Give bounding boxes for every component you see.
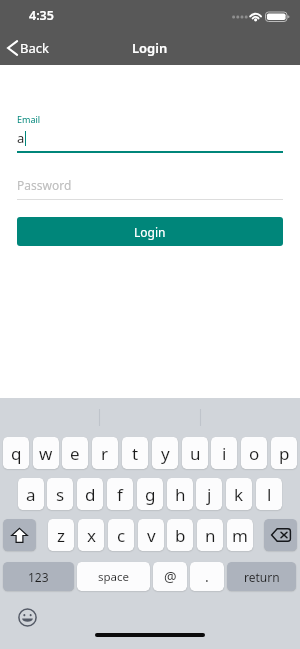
button[interactable]: v [138,519,164,551]
staticText: Email [17,113,41,125]
button[interactable]: n [197,519,223,551]
staticText: d [85,483,96,506]
button[interactable]: Backspace [264,519,297,551]
staticText: a [26,483,36,506]
staticText: b [175,524,186,547]
staticText: t [132,442,139,465]
staticText: @ [164,567,177,586]
staticText: y [161,442,170,465]
staticText: return [244,569,280,585]
button[interactable]: 123 [3,562,74,591]
staticText: Password [17,177,72,193]
staticText: a [17,129,25,147]
staticText: l [267,483,272,506]
button[interactable]: o [241,437,267,469]
staticText: p [279,442,290,465]
button[interactable]: p [271,437,297,469]
staticText: n [205,524,216,547]
button[interactable]: f [107,478,133,510]
button[interactable]: h [167,478,193,510]
staticText: k [234,483,244,506]
button[interactable]: e [62,437,88,469]
button[interactable]: t [122,437,148,469]
staticText: z [57,524,65,547]
button[interactable]: w [33,437,59,469]
staticText: q [11,442,22,465]
staticText: s [56,483,65,506]
staticText: Back [20,39,49,57]
button[interactable]: Login [17,217,283,246]
staticText: u [190,442,201,465]
button[interactable]: return [227,562,296,591]
button[interactable]: y [152,437,178,469]
staticText: c [117,524,126,547]
staticText: g [145,483,156,506]
staticText: Login [132,39,168,57]
staticText: f [117,483,123,506]
staticText: 123 [28,569,49,585]
button[interactable]: Emoji keyboard [17,607,38,628]
staticText: j [207,483,212,506]
staticText: v [147,524,156,547]
staticText: Login [134,224,166,240]
button[interactable]: d [77,478,103,510]
staticText: r [101,442,109,465]
button[interactable]: q [3,437,29,469]
button[interactable]: m [227,519,253,551]
button[interactable]: j [196,478,222,510]
button[interactable]: r [92,437,118,469]
button[interactable]: @ [153,562,187,591]
button[interactable]: z [48,519,74,551]
staticText: h [175,483,186,506]
staticText: m [232,524,248,547]
button[interactable]: a [18,478,44,510]
staticText: i [222,442,227,465]
button[interactable]: Shift [3,519,36,551]
button[interactable]: s [47,478,73,510]
staticText: w [39,442,53,465]
staticText: e [70,442,80,465]
button[interactable]: x [78,519,104,551]
staticText: 4:35 [29,7,54,24]
button[interactable]: k [226,478,252,510]
staticText: . [205,567,209,586]
button[interactable]: u [182,437,208,469]
button[interactable]: c [108,519,134,551]
button[interactable]: Back [0,35,59,61]
button[interactable]: b [167,519,193,551]
staticText: x [87,524,96,547]
button[interactable]: g [137,478,163,510]
button[interactable]: l [256,478,282,510]
button[interactable]: i [211,437,237,469]
button[interactable]: space [77,562,150,591]
staticText: space [98,569,130,585]
button[interactable]: . [190,562,224,591]
staticText: o [249,442,260,465]
